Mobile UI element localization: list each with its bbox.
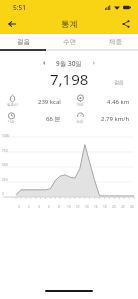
staticText: 250 <box>2 178 8 182</box>
staticText: 칼로리 <box>7 103 18 108</box>
staticText: 1000 <box>2 134 10 138</box>
staticText: 12 <box>76 205 80 209</box>
button[interactable]: 시간 <box>0 110 69 127</box>
staticText: 5:51 <box>13 3 26 12</box>
staticText: 0 <box>18 205 20 209</box>
button[interactable]: 거리 <box>69 93 138 110</box>
staticText: 14 <box>85 205 89 209</box>
staticText: 500 <box>2 163 8 167</box>
staticText: 0 <box>2 192 4 196</box>
staticText: 6 <box>48 205 50 209</box>
staticText: 수면 <box>63 38 76 46</box>
staticText: 750 <box>2 149 8 153</box>
staticText: 통계 <box>61 19 78 30</box>
button[interactable]: 칼로리 <box>0 93 69 110</box>
staticText: 4 <box>38 205 40 209</box>
staticText: 2.79 km/h <box>101 115 130 123</box>
staticText: 걸음 <box>17 38 30 46</box>
staticText: 24 <box>130 205 134 209</box>
button[interactable]: 체중 <box>92 34 138 49</box>
staticText: 속도 <box>76 120 84 125</box>
staticText: 66 분 <box>46 115 61 123</box>
staticText: 거리 <box>76 103 84 108</box>
button[interactable]: 걸음 <box>0 34 46 49</box>
staticText: 체중 <box>109 38 122 46</box>
staticText: 239 kcal <box>38 98 61 106</box>
staticText: 4.46 km <box>107 98 130 106</box>
staticText: 9월 30일 <box>56 59 82 68</box>
button[interactable]: 수면 <box>46 34 92 49</box>
staticText: 22 <box>121 205 125 209</box>
staticText: 10 <box>67 205 71 209</box>
staticText: 18 <box>103 205 107 209</box>
staticText: 16 <box>94 205 98 209</box>
staticText: 2 <box>28 205 30 209</box>
button[interactable]: Previous day <box>38 57 50 69</box>
staticText: 8 <box>58 205 60 209</box>
staticText: 시간 <box>7 120 15 125</box>
button[interactable]: Share <box>118 16 134 32</box>
staticText: 20 <box>112 205 116 209</box>
staticText: 걸음 <box>114 79 124 85</box>
button[interactable]: 속도 <box>69 110 138 127</box>
staticText: 7,198 <box>50 69 89 89</box>
button[interactable]: Back <box>4 16 20 32</box>
button[interactable]: Next day <box>88 57 100 69</box>
